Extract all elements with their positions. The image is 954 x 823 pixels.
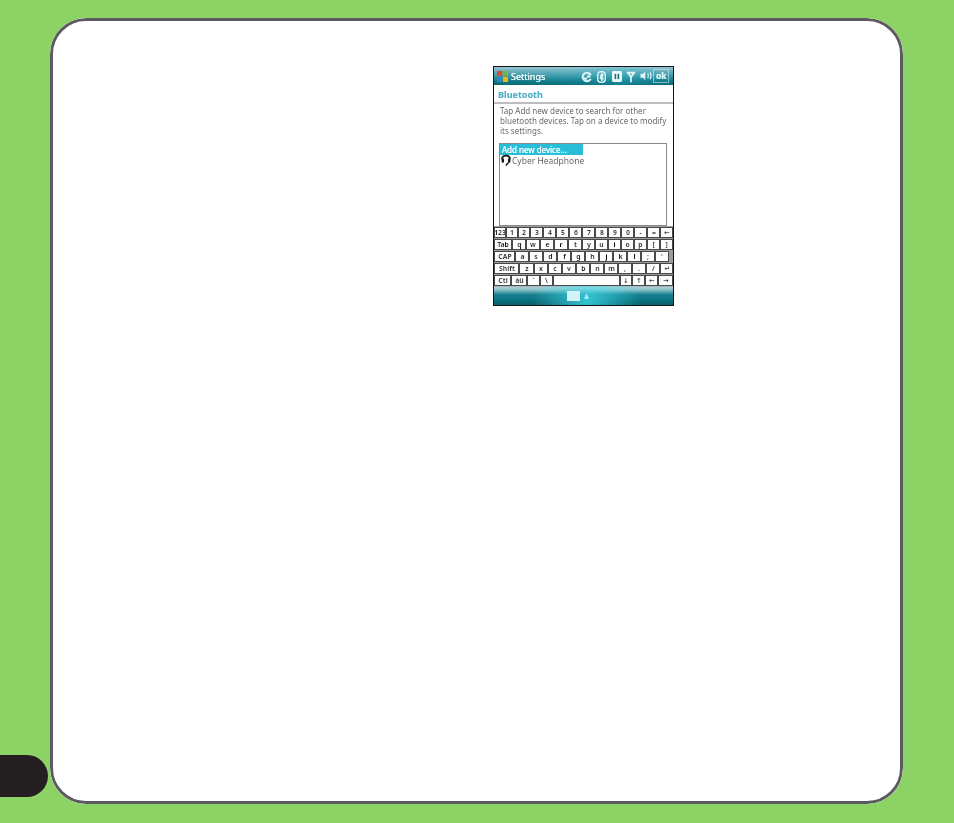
button[interactable]: 2: [518, 227, 530, 238]
button[interactable]: 0: [621, 227, 634, 238]
button[interactable]: q: [512, 239, 526, 250]
button[interactable]: Ctl: [494, 275, 511, 286]
staticText: Shift: [499, 264, 515, 273]
staticText: ;: [647, 252, 649, 261]
button[interactable]: 1: [506, 227, 518, 238]
button[interactable]: p: [634, 239, 647, 250]
staticText: Ctl: [498, 276, 508, 285]
button[interactable]: e: [540, 239, 554, 250]
button[interactable]: [553, 275, 620, 286]
button[interactable]: Sync: [580, 70, 593, 83]
button[interactable]: CAP: [494, 251, 515, 262]
staticText: áü: [515, 276, 524, 285]
button[interactable]: y: [582, 239, 595, 250]
staticText: x: [539, 264, 543, 273]
button[interactable]: k: [613, 251, 627, 262]
staticText: y: [587, 240, 591, 249]
button[interactable]: ←: [660, 227, 673, 238]
button[interactable]: 5: [556, 227, 569, 238]
staticText: ←: [664, 229, 670, 237]
staticText: ↓: [623, 277, 629, 285]
staticText: ↑: [636, 277, 642, 285]
button[interactable]: -: [634, 227, 647, 238]
button[interactable]: 6: [569, 227, 582, 238]
button[interactable]: m: [604, 263, 618, 274]
button[interactable]: =: [647, 227, 660, 238]
button[interactable]: 7: [582, 227, 595, 238]
button[interactable]: d: [543, 251, 557, 262]
staticText: k: [618, 252, 623, 261]
button[interactable]: w: [526, 239, 540, 250]
staticText: `: [532, 276, 535, 285]
button[interactable]: o: [621, 239, 634, 250]
staticText: h: [590, 252, 595, 261]
button[interactable]: \: [540, 275, 553, 286]
staticText: 3: [535, 228, 539, 237]
button[interactable]: 123: [494, 227, 506, 238]
button[interactable]: r: [554, 239, 568, 250]
button[interactable]: Bluetooth: [596, 70, 607, 83]
staticText: f: [563, 252, 566, 261]
button[interactable]: Speaker volume: [638, 69, 652, 83]
button[interactable]: áü: [511, 275, 527, 286]
button[interactable]: a: [515, 251, 529, 262]
button[interactable]: Shift: [494, 263, 519, 274]
button[interactable]: ←: [645, 275, 658, 286]
button[interactable]: l: [627, 251, 641, 262]
button[interactable]: ,: [618, 263, 632, 274]
button[interactable]: /: [646, 263, 660, 274]
staticText: 9: [613, 228, 617, 237]
button[interactable]: n: [590, 263, 604, 274]
button[interactable]: ': [655, 251, 669, 262]
button[interactable]: i: [608, 239, 621, 250]
staticText: j: [605, 252, 608, 261]
staticText: r: [559, 240, 563, 249]
button[interactable]: v: [562, 263, 576, 274]
button[interactable]: u: [595, 239, 608, 250]
button[interactable]: g: [571, 251, 585, 262]
staticText: Settings: [511, 70, 546, 82]
button[interactable]: Signal strength: [625, 70, 636, 83]
staticText: Add new device...: [502, 144, 567, 155]
button[interactable]: s: [529, 251, 543, 262]
button[interactable]: j: [599, 251, 613, 262]
button[interactable]: →: [658, 275, 673, 286]
button[interactable]: Cyber Headphone: [500, 155, 666, 166]
button[interactable]: Add new device...: [500, 144, 583, 155]
button[interactable]: .: [632, 263, 646, 274]
staticText: z: [525, 264, 529, 273]
staticText: [: [652, 240, 655, 249]
button[interactable]: f: [557, 251, 571, 262]
button[interactable]: 9: [608, 227, 621, 238]
button[interactable]: 4: [543, 227, 556, 238]
button[interactable]: ;: [641, 251, 655, 262]
staticText: n: [595, 264, 600, 273]
button[interactable]: 8: [595, 227, 608, 238]
button[interactable]: ok: [653, 69, 669, 83]
staticText: 0: [626, 228, 630, 237]
button[interactable]: `: [527, 275, 540, 286]
button[interactable]: z: [519, 263, 534, 274]
button[interactable]: Volume: [611, 70, 623, 83]
staticText: u: [599, 240, 604, 249]
staticText: →: [663, 277, 669, 285]
button[interactable]: ]: [660, 239, 673, 250]
staticText: w: [530, 240, 536, 249]
button[interactable]: x: [534, 263, 548, 274]
button[interactable]: ↓: [620, 275, 632, 286]
button[interactable]: c: [548, 263, 562, 274]
button[interactable]: 3: [530, 227, 543, 238]
staticText: =: [652, 228, 656, 237]
button[interactable]: h: [585, 251, 599, 262]
button[interactable]: ↵: [660, 263, 673, 274]
staticText: g: [576, 252, 581, 261]
button[interactable]: ↑: [632, 275, 645, 286]
staticText: 123: [494, 228, 506, 237]
button[interactable]: [: [647, 239, 660, 250]
button[interactable]: Tab: [494, 239, 512, 250]
button[interactable]: t: [568, 239, 582, 250]
staticText: s: [534, 252, 538, 261]
staticText: Bluetooth: [498, 88, 543, 100]
button[interactable]: b: [576, 263, 590, 274]
